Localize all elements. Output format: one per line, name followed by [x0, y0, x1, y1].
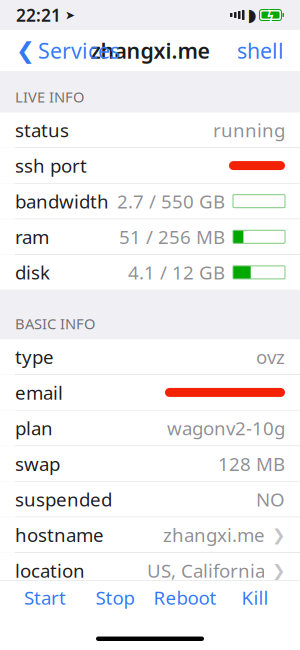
button[interactable]: location: [0, 553, 300, 588]
staticText: Kill: [241, 585, 268, 610]
staticText: Reboot: [153, 585, 216, 610]
button[interactable]: ssh port: [0, 148, 300, 183]
button[interactable]: type: [0, 339, 300, 374]
staticText: ◗: [247, 5, 256, 25]
button[interactable]: plan: [0, 411, 300, 446]
staticText: hostname: [15, 522, 104, 547]
button[interactable]: shell: [227, 28, 294, 73]
staticText: 128 MB: [218, 451, 285, 476]
staticText: Stop: [95, 585, 134, 610]
staticText: ovz: [256, 344, 285, 369]
button[interactable]: Kill: [220, 581, 290, 615]
button[interactable]: disk: [0, 255, 300, 290]
button[interactable]: ram: [0, 219, 300, 254]
staticText: running: [213, 118, 285, 142]
button[interactable]: ❮: [6, 28, 130, 73]
staticText: LIVE INFO: [15, 87, 84, 106]
staticText: zhangxi.me: [163, 522, 265, 547]
staticText: ❯: [272, 561, 285, 580]
staticText: ➤: [61, 8, 75, 22]
button[interactable]: swap: [0, 446, 300, 481]
button[interactable]: email: [0, 375, 300, 410]
staticText: Start: [24, 585, 66, 610]
staticText: suspended: [15, 487, 112, 512]
staticText: 51 / 256 MB: [119, 224, 225, 249]
staticText: bandwidth: [15, 189, 109, 214]
staticText: zhangxi.me: [90, 36, 209, 65]
staticText: 22:21: [16, 3, 61, 26]
button[interactable]: hostname: [0, 517, 300, 552]
staticText: US, California: [147, 558, 265, 583]
staticText: email: [15, 380, 63, 405]
staticText: shell: [237, 36, 284, 65]
staticText: ssh port: [15, 153, 87, 178]
staticText: wagonv2-10g: [167, 416, 285, 440]
staticText: plan: [15, 416, 53, 440]
staticText: ϟ: [267, 7, 274, 23]
staticText: location: [15, 558, 85, 583]
staticText: Services: [38, 36, 120, 65]
staticText: ❮: [16, 38, 35, 63]
button[interactable]: bandwidth: [0, 184, 300, 219]
staticText: ram: [15, 224, 49, 249]
button[interactable]: suspended: [0, 482, 300, 517]
button[interactable]: Start: [10, 581, 80, 615]
staticText: 4.1 / 12 GB: [128, 260, 225, 285]
staticText: disk: [15, 260, 50, 285]
button[interactable]: Reboot: [150, 581, 220, 615]
staticText: swap: [15, 451, 60, 476]
staticText: status: [15, 118, 69, 142]
staticText: 2.7 / 550 GB: [117, 189, 225, 214]
staticText: BASIC INFO: [15, 314, 95, 333]
button[interactable]: Stop: [80, 581, 150, 615]
staticText: ❯: [272, 526, 285, 544]
button[interactable]: status: [0, 112, 300, 147]
staticText: NO: [256, 487, 285, 512]
staticText: type: [15, 344, 54, 369]
